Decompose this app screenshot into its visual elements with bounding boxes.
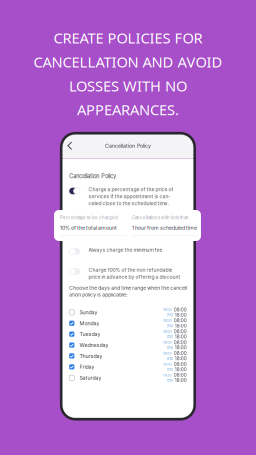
staticText: LOSSES WITH NO [69, 76, 187, 95]
staticText: 18:00 [175, 345, 187, 350]
staticText: inicio [162, 351, 171, 356]
button[interactable]: Friday [69, 361, 187, 372]
staticText: inicio [162, 307, 171, 312]
staticText: Cancellations with less than [132, 215, 189, 220]
staticText: Sunday [79, 309, 97, 316]
staticText: Tuesday [79, 331, 100, 337]
staticText: end [166, 334, 172, 339]
button[interactable]: Tuesday [69, 329, 187, 340]
staticText: 08:00 [174, 350, 187, 356]
staticText: end [166, 324, 172, 328]
staticText: price in advance by offering a discount [88, 274, 180, 280]
staticText: Saturday [79, 374, 101, 381]
button[interactable]: Thursday [69, 350, 187, 361]
staticText: Choose the days and time range when the … [69, 285, 187, 291]
staticText: end [166, 345, 172, 350]
button[interactable]: Monday [69, 318, 187, 329]
staticText: Charge a percentage of the price of [88, 186, 173, 192]
staticText: Cancellation Policy [105, 142, 151, 149]
staticText: Thursday [79, 353, 102, 359]
staticText: Percentage to be charged [60, 215, 118, 220]
staticText: Always charge the minimum fee [88, 247, 162, 253]
staticText: end [166, 313, 172, 317]
button[interactable]: Charge 100% of the non refundable [69, 267, 187, 280]
button[interactable]: Percentage to be charged [60, 215, 126, 236]
staticText: Wednesday [79, 342, 108, 348]
staticText: Charge 100% of the non refundable [88, 267, 172, 273]
staticText: 08:00 [174, 329, 187, 334]
staticText: end [166, 367, 172, 372]
staticText: Monday [79, 320, 99, 326]
staticText: inicio [162, 318, 171, 323]
staticText: 10% of the total amount [60, 225, 117, 231]
staticText: Cancellation Policy [69, 173, 116, 180]
staticText: 08:00 [174, 361, 187, 367]
button[interactable]: Back [61, 138, 76, 154]
button[interactable]: Sunday [69, 307, 187, 318]
staticText: inicio [162, 373, 171, 377]
staticText: CREATE POLICIES FOR [53, 28, 202, 47]
staticText: 18:00 [175, 377, 187, 383]
button[interactable]: Wednesday [69, 340, 187, 350]
staticText: end [166, 356, 172, 361]
staticText: ation policy is applicable: [69, 292, 127, 298]
staticText: 18:00 [175, 367, 187, 372]
button[interactable]: Cancellations with less than [132, 215, 198, 236]
staticText: inicio [162, 329, 171, 334]
staticText: inicio [162, 340, 171, 345]
staticText: services if the appointment is can- [88, 193, 170, 199]
staticText: APPEARANCES. [77, 100, 179, 119]
button[interactable]: Always charge the minimum fee [69, 247, 187, 255]
staticText: 08:00 [174, 372, 187, 378]
staticText: 08:00 [174, 318, 187, 323]
staticText: end [166, 378, 172, 383]
button[interactable]: Saturday [69, 372, 187, 383]
staticText: 18:00 [175, 323, 187, 329]
staticText: celed close to the scheduled time. [88, 200, 168, 206]
staticText: 08:00 [174, 340, 187, 345]
staticText: 18:00 [175, 356, 187, 361]
staticText: 18:00 [175, 312, 187, 318]
button[interactable]: Charge a percentage of the price of [69, 186, 187, 206]
staticText: 1 hour from scheduled time [132, 225, 197, 231]
staticText: 18:00 [175, 334, 187, 339]
staticText: 08:00 [174, 307, 187, 312]
staticText: inicio [162, 362, 171, 366]
staticText: CANCELLATION AND AVOID [33, 52, 222, 71]
staticText: Friday [79, 364, 94, 370]
